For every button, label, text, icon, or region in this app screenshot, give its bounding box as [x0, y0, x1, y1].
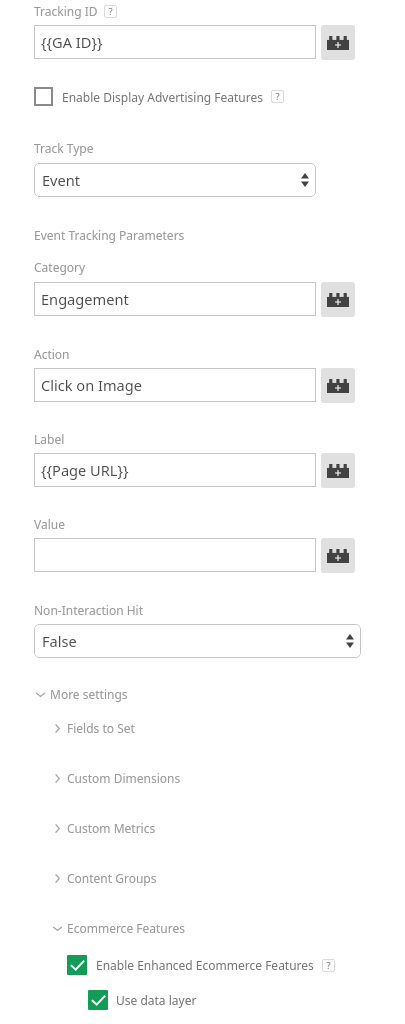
button[interactable]: Use data layer checkbox — [88, 990, 108, 1010]
staticText: Ecommerce Features — [67, 920, 185, 936]
staticText: {{Page URL}} — [41, 460, 129, 480]
staticText: Value — [34, 516, 65, 532]
staticText: Custom Metrics — [67, 820, 156, 836]
button[interactable]: Engagement — [34, 282, 316, 316]
staticText: Content Groups — [67, 870, 157, 886]
button[interactable]: Insert variable — [321, 538, 355, 573]
staticText: Event Tracking Parameters — [34, 227, 185, 243]
staticText: ? — [275, 90, 280, 103]
button[interactable]: Enable Display Advertising Features chec… — [34, 87, 53, 106]
button[interactable]: Enable Enhanced Ecommerce Features check… — [67, 955, 335, 975]
staticText: Enable Enhanced Ecommerce Features — [96, 957, 314, 973]
button[interactable]: Insert variable — [321, 368, 355, 403]
staticText: Track Type — [34, 140, 94, 156]
button[interactable]: Enable Enhanced Ecommerce Features check… — [67, 955, 87, 975]
button[interactable]: Fields to Set — [52, 719, 139, 737]
staticText: Label — [34, 431, 65, 447]
staticText: Event — [42, 170, 81, 190]
staticText: Use data layer — [116, 992, 197, 1008]
button[interactable]: Click on Image — [34, 368, 316, 402]
button[interactable]: Insert variable — [321, 282, 355, 317]
button[interactable]: Event — [34, 163, 316, 197]
button[interactable]: {{Page URL}} — [34, 453, 316, 487]
staticText: Tracking ID — [34, 3, 98, 19]
button[interactable]: Content Groups — [52, 869, 161, 887]
staticText: Category — [34, 259, 86, 275]
button[interactable]: More settings — [35, 685, 132, 703]
button[interactable]: Help — [104, 5, 117, 18]
button[interactable]: Enable Display Advertising Features chec… — [34, 87, 284, 106]
staticText: ? — [326, 959, 331, 972]
button[interactable]: False — [34, 624, 361, 658]
button[interactable]: Ecommerce Features — [52, 919, 189, 937]
staticText: Fields to Set — [67, 720, 135, 736]
button[interactable]: Custom Dimensions — [52, 769, 185, 787]
button[interactable] — [34, 538, 316, 572]
staticText: Non-Interaction Hit — [34, 602, 143, 618]
button[interactable]: Help — [271, 90, 284, 103]
button[interactable]: Insert variable — [321, 25, 355, 60]
staticText: More settings — [50, 686, 128, 702]
staticText: Enable Display Advertising Features — [62, 89, 264, 105]
staticText: Click on Image — [41, 375, 142, 395]
staticText: Custom Dimensions — [67, 770, 181, 786]
staticText: Engagement — [41, 289, 129, 309]
button[interactable]: Insert variable — [321, 453, 355, 488]
button[interactable]: Use data layer checkbox — [88, 990, 197, 1010]
staticText: {{GA ID}} — [41, 32, 103, 52]
button[interactable]: Custom Metrics — [52, 819, 160, 837]
staticText: False — [42, 631, 77, 651]
staticText: ? — [108, 5, 113, 18]
button[interactable]: {{GA ID}} — [34, 25, 316, 59]
button[interactable]: Help — [322, 959, 335, 972]
staticText: Action — [34, 346, 70, 362]
